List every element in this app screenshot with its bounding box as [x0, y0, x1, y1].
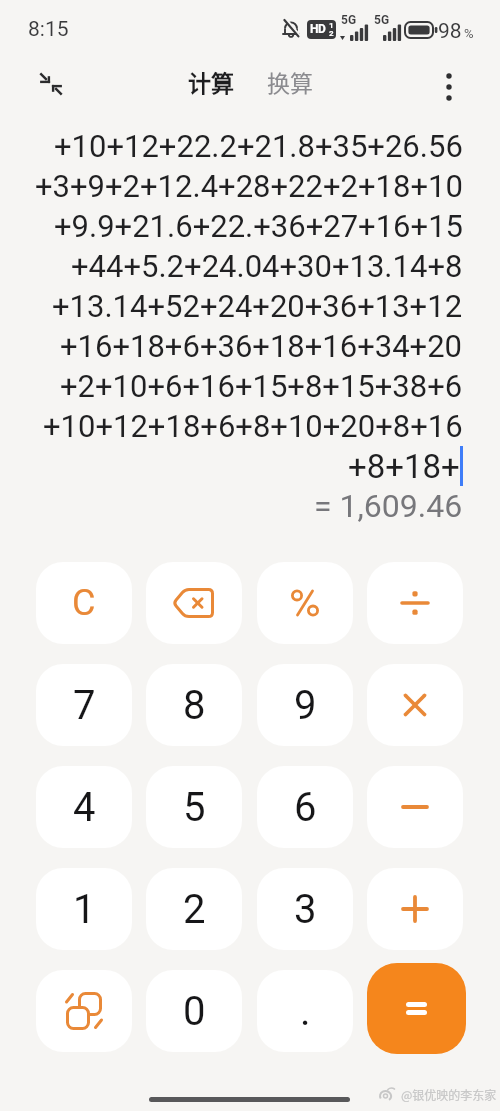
button[interactable]: [146, 562, 242, 644]
staticText: 计算: [188, 65, 234, 98]
staticText: 2: [329, 29, 334, 38]
button[interactable]: [367, 562, 463, 644]
staticText: %: [464, 26, 474, 41]
staticText: 5G: [341, 13, 357, 27]
staticText: .: [300, 988, 311, 1035]
button[interactable]: 换算: [267, 65, 313, 98]
button[interactable]: 3: [257, 868, 353, 950]
button[interactable]: 5: [146, 766, 242, 848]
staticText: +2+10+6+16+15+8+15+38+6: [60, 368, 463, 404]
staticText: 1: [329, 21, 334, 30]
staticText: 5G: [374, 13, 390, 27]
staticText: HD: [310, 22, 326, 36]
button[interactable]: 9: [257, 664, 353, 746]
button[interactable]: [436, 63, 462, 111]
staticText: +10+12+22.2+21.8+35+26.56: [54, 128, 463, 164]
staticText: 6: [294, 784, 317, 831]
staticText: 2: [183, 886, 206, 933]
button[interactable]: 计算: [188, 65, 234, 98]
staticText: 0: [183, 988, 206, 1035]
staticText: 3: [294, 886, 317, 933]
button[interactable]: 2: [146, 868, 242, 950]
button[interactable]: 8: [146, 664, 242, 746]
button[interactable]: 0: [146, 970, 242, 1052]
button[interactable]: 7: [36, 664, 132, 746]
button[interactable]: [367, 766, 463, 848]
staticText: +8+18+: [348, 447, 460, 486]
button[interactable]: 1: [36, 868, 132, 950]
staticText: +16+18+6+36+18+16+34+20: [60, 328, 463, 364]
button[interactable]: C: [36, 562, 132, 644]
button[interactable]: [367, 963, 466, 1054]
staticText: 98: [438, 19, 462, 44]
staticText: 9: [294, 682, 317, 729]
button[interactable]: 6: [257, 766, 353, 848]
staticText: @银优映的李东家: [401, 1086, 497, 1103]
staticText: 8:15: [28, 17, 69, 42]
staticText: = 1,609.46: [314, 487, 463, 525]
staticText: 1: [73, 886, 96, 933]
staticText: +10+12+18+6+8+10+20+8+16: [43, 408, 463, 444]
button[interactable]: [367, 868, 463, 950]
staticText: +13.14+52+24+20+36+13+12: [52, 288, 463, 324]
staticText: 8: [183, 682, 206, 729]
button[interactable]: 4: [36, 766, 132, 848]
button[interactable]: .: [257, 970, 353, 1052]
staticText: 7: [73, 682, 96, 729]
staticText: 5: [183, 784, 206, 831]
button[interactable]: [36, 71, 66, 99]
staticText: +3+9+2+12.4+28+22+2+18+10: [35, 168, 463, 204]
staticText: +44+5.2+24.04+30+13.14+8: [71, 248, 463, 284]
staticText: +9.9+21.6+22.+36+27+16+15: [54, 208, 463, 244]
staticText: 换算: [267, 65, 313, 98]
button[interactable]: [367, 664, 463, 746]
staticText: C: [72, 582, 96, 624]
button[interactable]: [36, 970, 132, 1052]
button[interactable]: [257, 562, 353, 644]
staticText: 4: [73, 784, 96, 831]
